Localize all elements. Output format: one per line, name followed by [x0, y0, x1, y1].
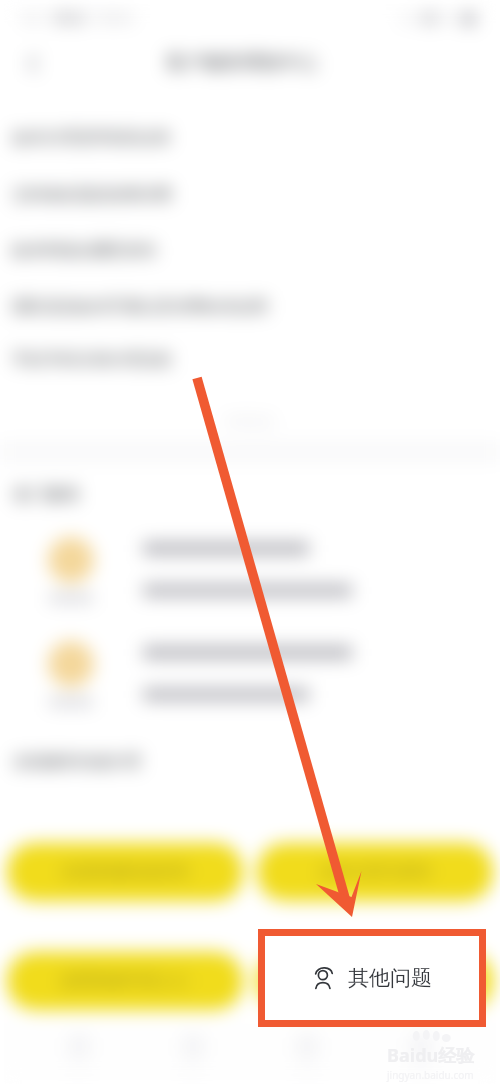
staticText: Baidu经验 — [387, 1043, 475, 1068]
staticText: 怎样修改我的套餐资费 — [12, 185, 172, 205]
staticText: 账单明细在哪里查询 — [12, 241, 156, 261]
button[interactable] — [0, 612, 500, 716]
staticText: 其他问题 — [348, 965, 432, 991]
staticText: 国际漫游如何开通以及资费标准说明 — [12, 297, 268, 317]
button[interactable]: 手机号码注销办理流程 — [0, 332, 500, 388]
button[interactable]: 国际漫游如何开通以及资费标准说明 — [0, 279, 500, 335]
button[interactable] — [0, 508, 500, 612]
button[interactable]: 其他问题 — [265, 936, 479, 1020]
button[interactable]: 我的 — [386, 1035, 456, 1074]
staticText: 业务办理与查询 — [319, 862, 431, 882]
staticText: 如何办理宽带新装业务 — [12, 128, 172, 148]
staticText: jingyan.baidu.com — [387, 1068, 474, 1082]
button[interactable]: 故障报修申报入口 — [7, 952, 243, 1010]
staticText: 我的 — [411, 1061, 431, 1074]
button[interactable]: 查看更多 — [0, 400, 500, 442]
staticText: 手机号码注销办理流程 — [12, 350, 172, 370]
staticText: 自助服务快捷办理 — [13, 752, 141, 772]
button[interactable]: 如何办理宽带新装业务 — [0, 110, 500, 166]
staticText: 热门服务 — [13, 484, 81, 505]
button[interactable]: 其他问题 — [257, 952, 493, 1010]
button[interactable]: 怎样修改我的套餐资费 — [0, 167, 500, 223]
button[interactable]: 在线客服快速咨询 — [7, 843, 243, 901]
button[interactable]: 账单明细在哪里查询 — [0, 223, 500, 279]
staticText: 其他问题 — [343, 971, 407, 991]
staticText: 故障报修申报入口 — [61, 971, 189, 991]
staticText: 客户服务帮助中心 — [166, 51, 318, 75]
button[interactable]: 业务办理与查询 — [257, 843, 493, 901]
